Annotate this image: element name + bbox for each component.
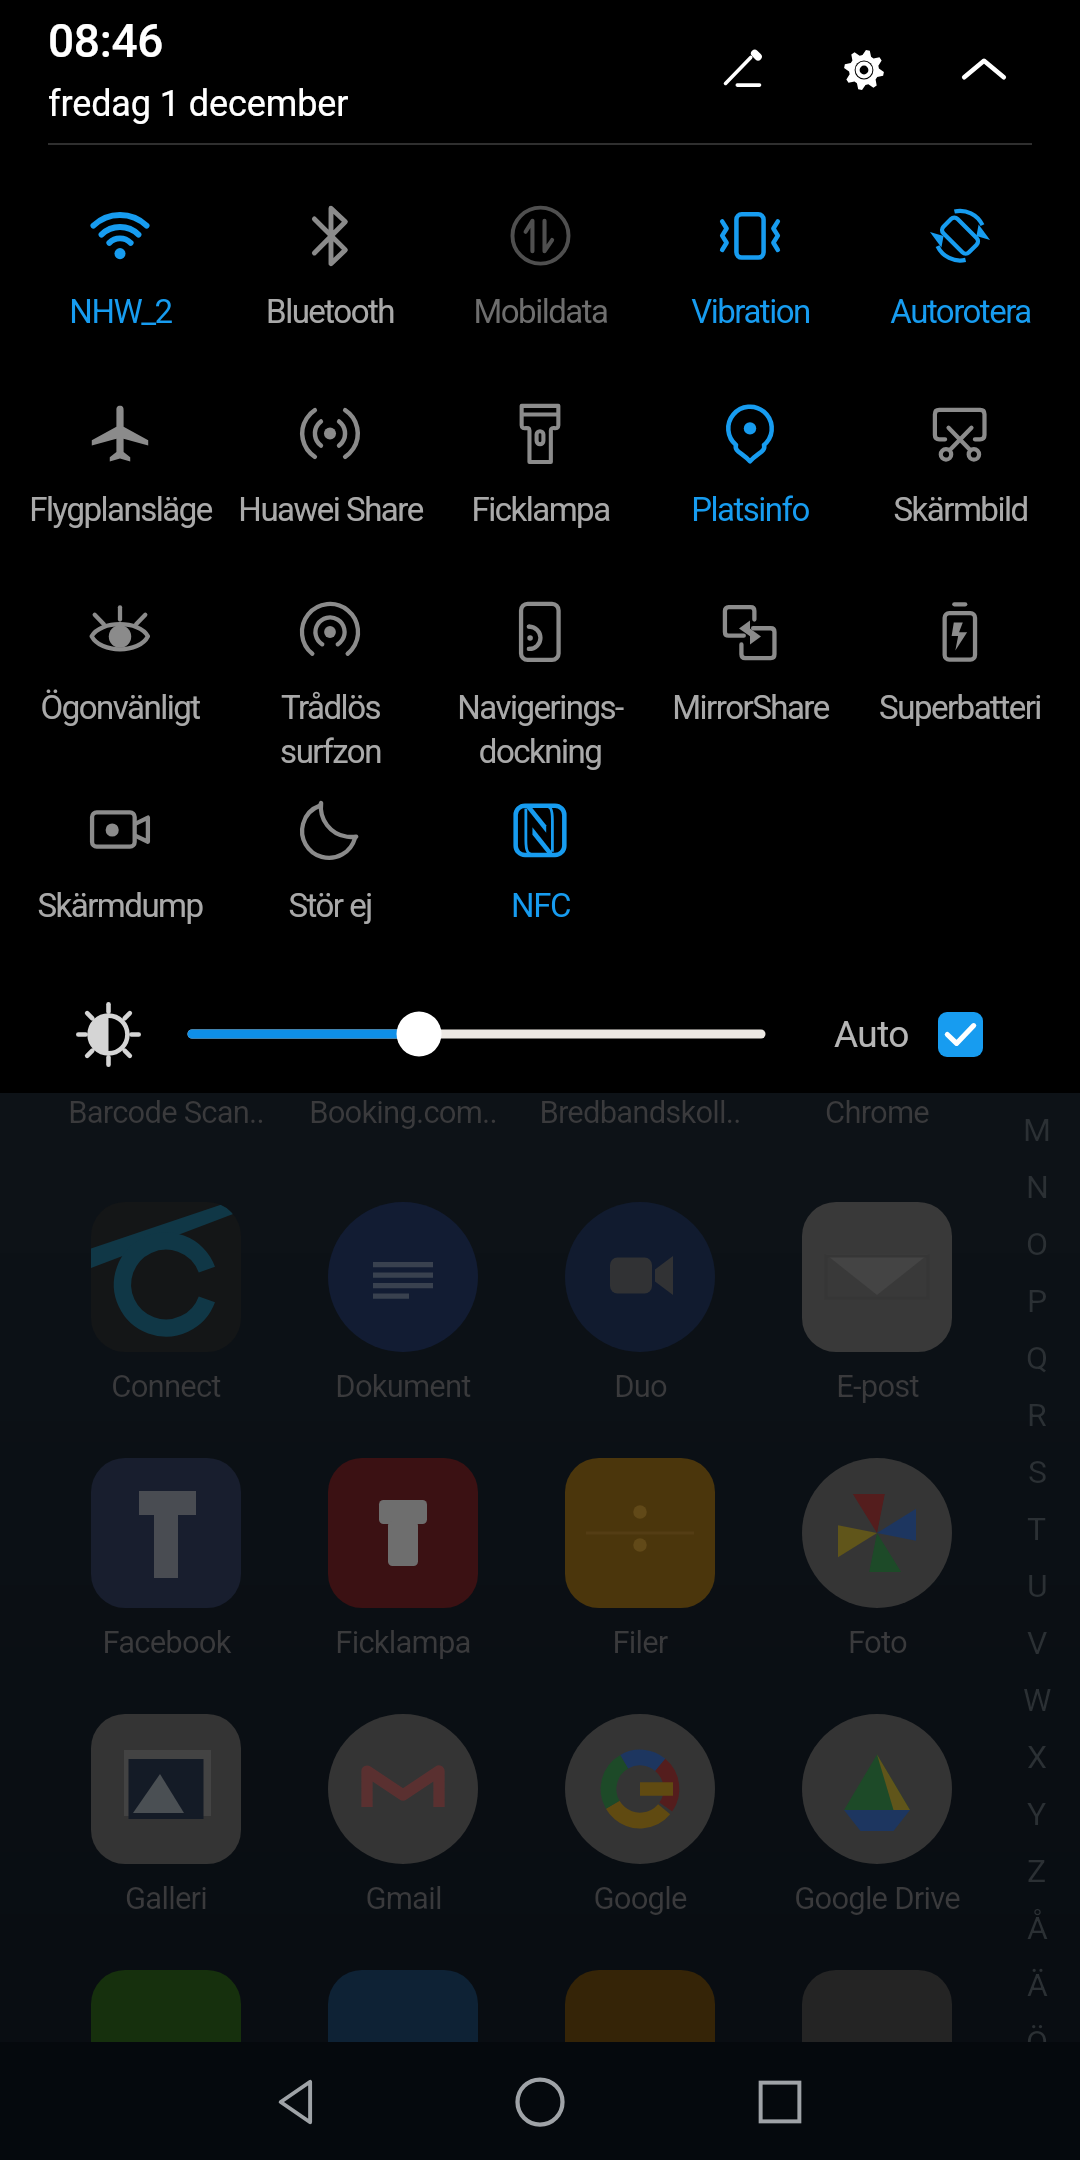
staticText: W xyxy=(1023,1681,1052,1719)
button[interactable]: Flygplansläge xyxy=(17,374,223,564)
button[interactable]: Ficklampa xyxy=(437,374,643,564)
button[interactable] xyxy=(91,1970,241,2120)
staticText: Google Drive xyxy=(794,1880,960,1916)
staticText: Barcode Scan.. xyxy=(68,1094,264,1130)
button[interactable]: W xyxy=(1014,1671,1060,1728)
button[interactable]: O xyxy=(1014,1215,1060,1272)
button[interactable]: NHW_2 xyxy=(17,176,223,366)
button[interactable]: Settings xyxy=(812,18,916,122)
button[interactable]: M xyxy=(1014,1101,1060,1158)
staticText: R xyxy=(1027,1396,1047,1434)
button[interactable] xyxy=(328,1970,478,2120)
staticText: S xyxy=(1028,1453,1047,1491)
button[interactable]: Navigerings- dockning xyxy=(437,572,643,762)
button[interactable]: Mobildata xyxy=(437,176,643,366)
button[interactable]: Z xyxy=(1014,1842,1060,1899)
staticText: T xyxy=(1027,1510,1047,1548)
button[interactable]: Huawei Share xyxy=(227,374,433,564)
staticText: 08:46 xyxy=(48,14,164,68)
button[interactable]: Back xyxy=(250,2052,350,2152)
staticText: Ficklampa xyxy=(471,490,610,529)
button[interactable]: V xyxy=(1014,1614,1060,1671)
button[interactable]: R xyxy=(1014,1386,1060,1443)
staticText: Vibration xyxy=(691,292,810,331)
staticText: Flygplansläge xyxy=(29,490,212,529)
button[interactable]: Skärmbild xyxy=(857,374,1063,564)
staticText: NHW_2 xyxy=(69,292,172,331)
button[interactable]: Ögonvänligt xyxy=(17,572,223,762)
button[interactable]: Autorotera xyxy=(857,176,1063,366)
staticText: NFC xyxy=(511,886,570,925)
staticText: Y xyxy=(1027,1795,1047,1833)
button[interactable]: Edit quick settings xyxy=(692,18,796,122)
staticText: Connect xyxy=(111,1368,221,1404)
staticText: Platsinfo xyxy=(691,490,809,529)
staticText: Filer xyxy=(612,1624,668,1660)
staticText: Google xyxy=(593,1880,687,1916)
button[interactable] xyxy=(91,1458,241,1608)
button[interactable] xyxy=(328,1714,478,1864)
button[interactable]: Skärmdump xyxy=(17,770,223,960)
button[interactable] xyxy=(565,1970,715,2120)
staticText: Ögonvänligt xyxy=(40,688,200,727)
button[interactable] xyxy=(565,1458,715,1608)
button[interactable] xyxy=(91,1714,241,1864)
button[interactable] xyxy=(802,1714,952,1864)
staticText: Bluetooth xyxy=(266,292,394,331)
staticText: Galleri xyxy=(125,1880,207,1916)
button[interactable]: Auto xyxy=(834,1000,983,1068)
button[interactable]: Platsinfo xyxy=(647,374,853,564)
staticText: Gmail xyxy=(365,1880,442,1916)
staticText: V xyxy=(1027,1624,1048,1662)
button[interactable] xyxy=(802,1202,952,1352)
button[interactable]: Home xyxy=(490,2052,590,2152)
staticText: Mobildata xyxy=(473,292,608,331)
button[interactable] xyxy=(328,1202,478,1352)
staticText: Duo xyxy=(614,1368,667,1404)
staticText: Superbatteri xyxy=(879,688,1041,727)
button[interactable] xyxy=(565,1202,715,1352)
staticText: Auto xyxy=(834,1013,909,1056)
staticText: Trådlös surfzon xyxy=(280,688,381,771)
button[interactable] xyxy=(802,1970,952,2120)
button[interactable] xyxy=(328,1458,478,1608)
button[interactable]: Brightness mode xyxy=(72,998,144,1070)
staticText: Ö xyxy=(1026,2023,1049,2061)
button[interactable]: S xyxy=(1014,1443,1060,1500)
staticText: U xyxy=(1027,1567,1048,1605)
button[interactable]: Stör ej xyxy=(227,770,433,960)
button[interactable]: N xyxy=(1014,1158,1060,1215)
staticText: E-post xyxy=(836,1368,919,1404)
staticText: Z xyxy=(1027,1852,1047,1890)
staticText: Autorotera xyxy=(890,292,1031,331)
button[interactable] xyxy=(91,1202,241,1352)
button[interactable]: Vibration xyxy=(647,176,853,366)
button[interactable]: Bluetooth xyxy=(227,176,433,366)
button[interactable]: Recents xyxy=(730,2052,830,2152)
button[interactable]: Å xyxy=(1014,1899,1060,1956)
staticText: Stör ej xyxy=(288,886,372,925)
staticText: Huawei Share xyxy=(238,490,423,529)
staticText: Skärmbild xyxy=(893,490,1028,529)
button[interactable]: Superbatteri xyxy=(857,572,1063,762)
button[interactable]: Trådlös surfzon xyxy=(227,572,433,762)
button[interactable]: P xyxy=(1014,1272,1060,1329)
button[interactable]: Ä xyxy=(1014,1956,1060,2013)
button[interactable]: T xyxy=(1014,1500,1060,1557)
staticText: Chrome xyxy=(825,1094,929,1130)
staticText: P xyxy=(1027,1282,1048,1320)
button[interactable]: Y xyxy=(1014,1785,1060,1842)
button[interactable]: Q xyxy=(1014,1329,1060,1386)
button[interactable]: Collapse xyxy=(932,18,1036,122)
button[interactable]: X xyxy=(1014,1728,1060,1785)
button[interactable] xyxy=(565,1714,715,1864)
button[interactable]: NFC xyxy=(437,770,643,960)
staticText: Å xyxy=(1027,1909,1048,1947)
staticText: Ä xyxy=(1027,1966,1048,2004)
button[interactable]: Ö xyxy=(1014,2013,1060,2070)
button[interactable]: U xyxy=(1014,1557,1060,1614)
button[interactable] xyxy=(802,1458,952,1608)
staticText: Bredbandskoll.. xyxy=(539,1094,741,1130)
button[interactable]: Brightness xyxy=(170,1000,783,1068)
button[interactable]: MirrorShare xyxy=(647,572,853,762)
